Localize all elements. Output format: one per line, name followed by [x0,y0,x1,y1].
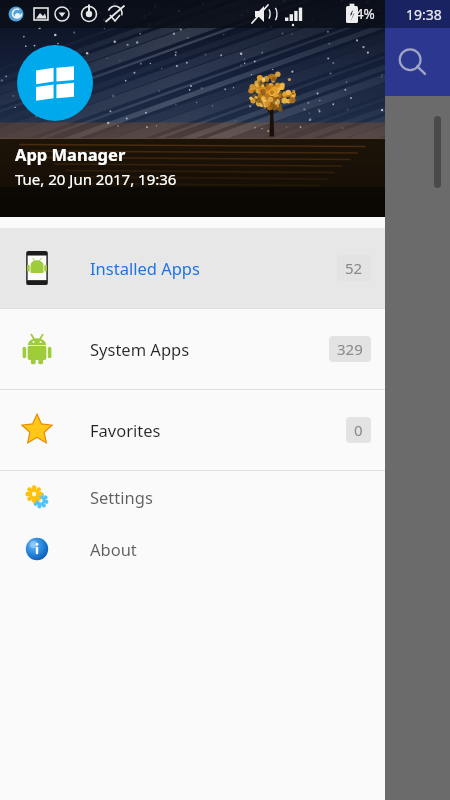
staticText: 74% [348,5,375,23]
button[interactable]: Settings [0,471,385,523]
staticText: Settings [90,486,153,508]
staticText: About [90,538,137,560]
staticText: Installed Apps [90,257,200,279]
staticText: System Apps [90,338,190,360]
staticText: Favorites [90,419,161,441]
button[interactable]: System Apps [0,309,385,389]
button[interactable]: Search [392,42,432,82]
staticText: Tue, 20 Jun 2017, 19:36 [15,169,177,189]
staticText: 329 [337,339,363,359]
button[interactable]: Installed Apps [0,228,385,308]
staticText: 52 [345,258,363,278]
button[interactable]: About [0,523,385,575]
button[interactable]: Favorites [0,390,385,470]
staticText: 0 [354,420,363,440]
staticText: 19:38 [406,5,442,24]
staticText: App Manager [15,143,126,165]
